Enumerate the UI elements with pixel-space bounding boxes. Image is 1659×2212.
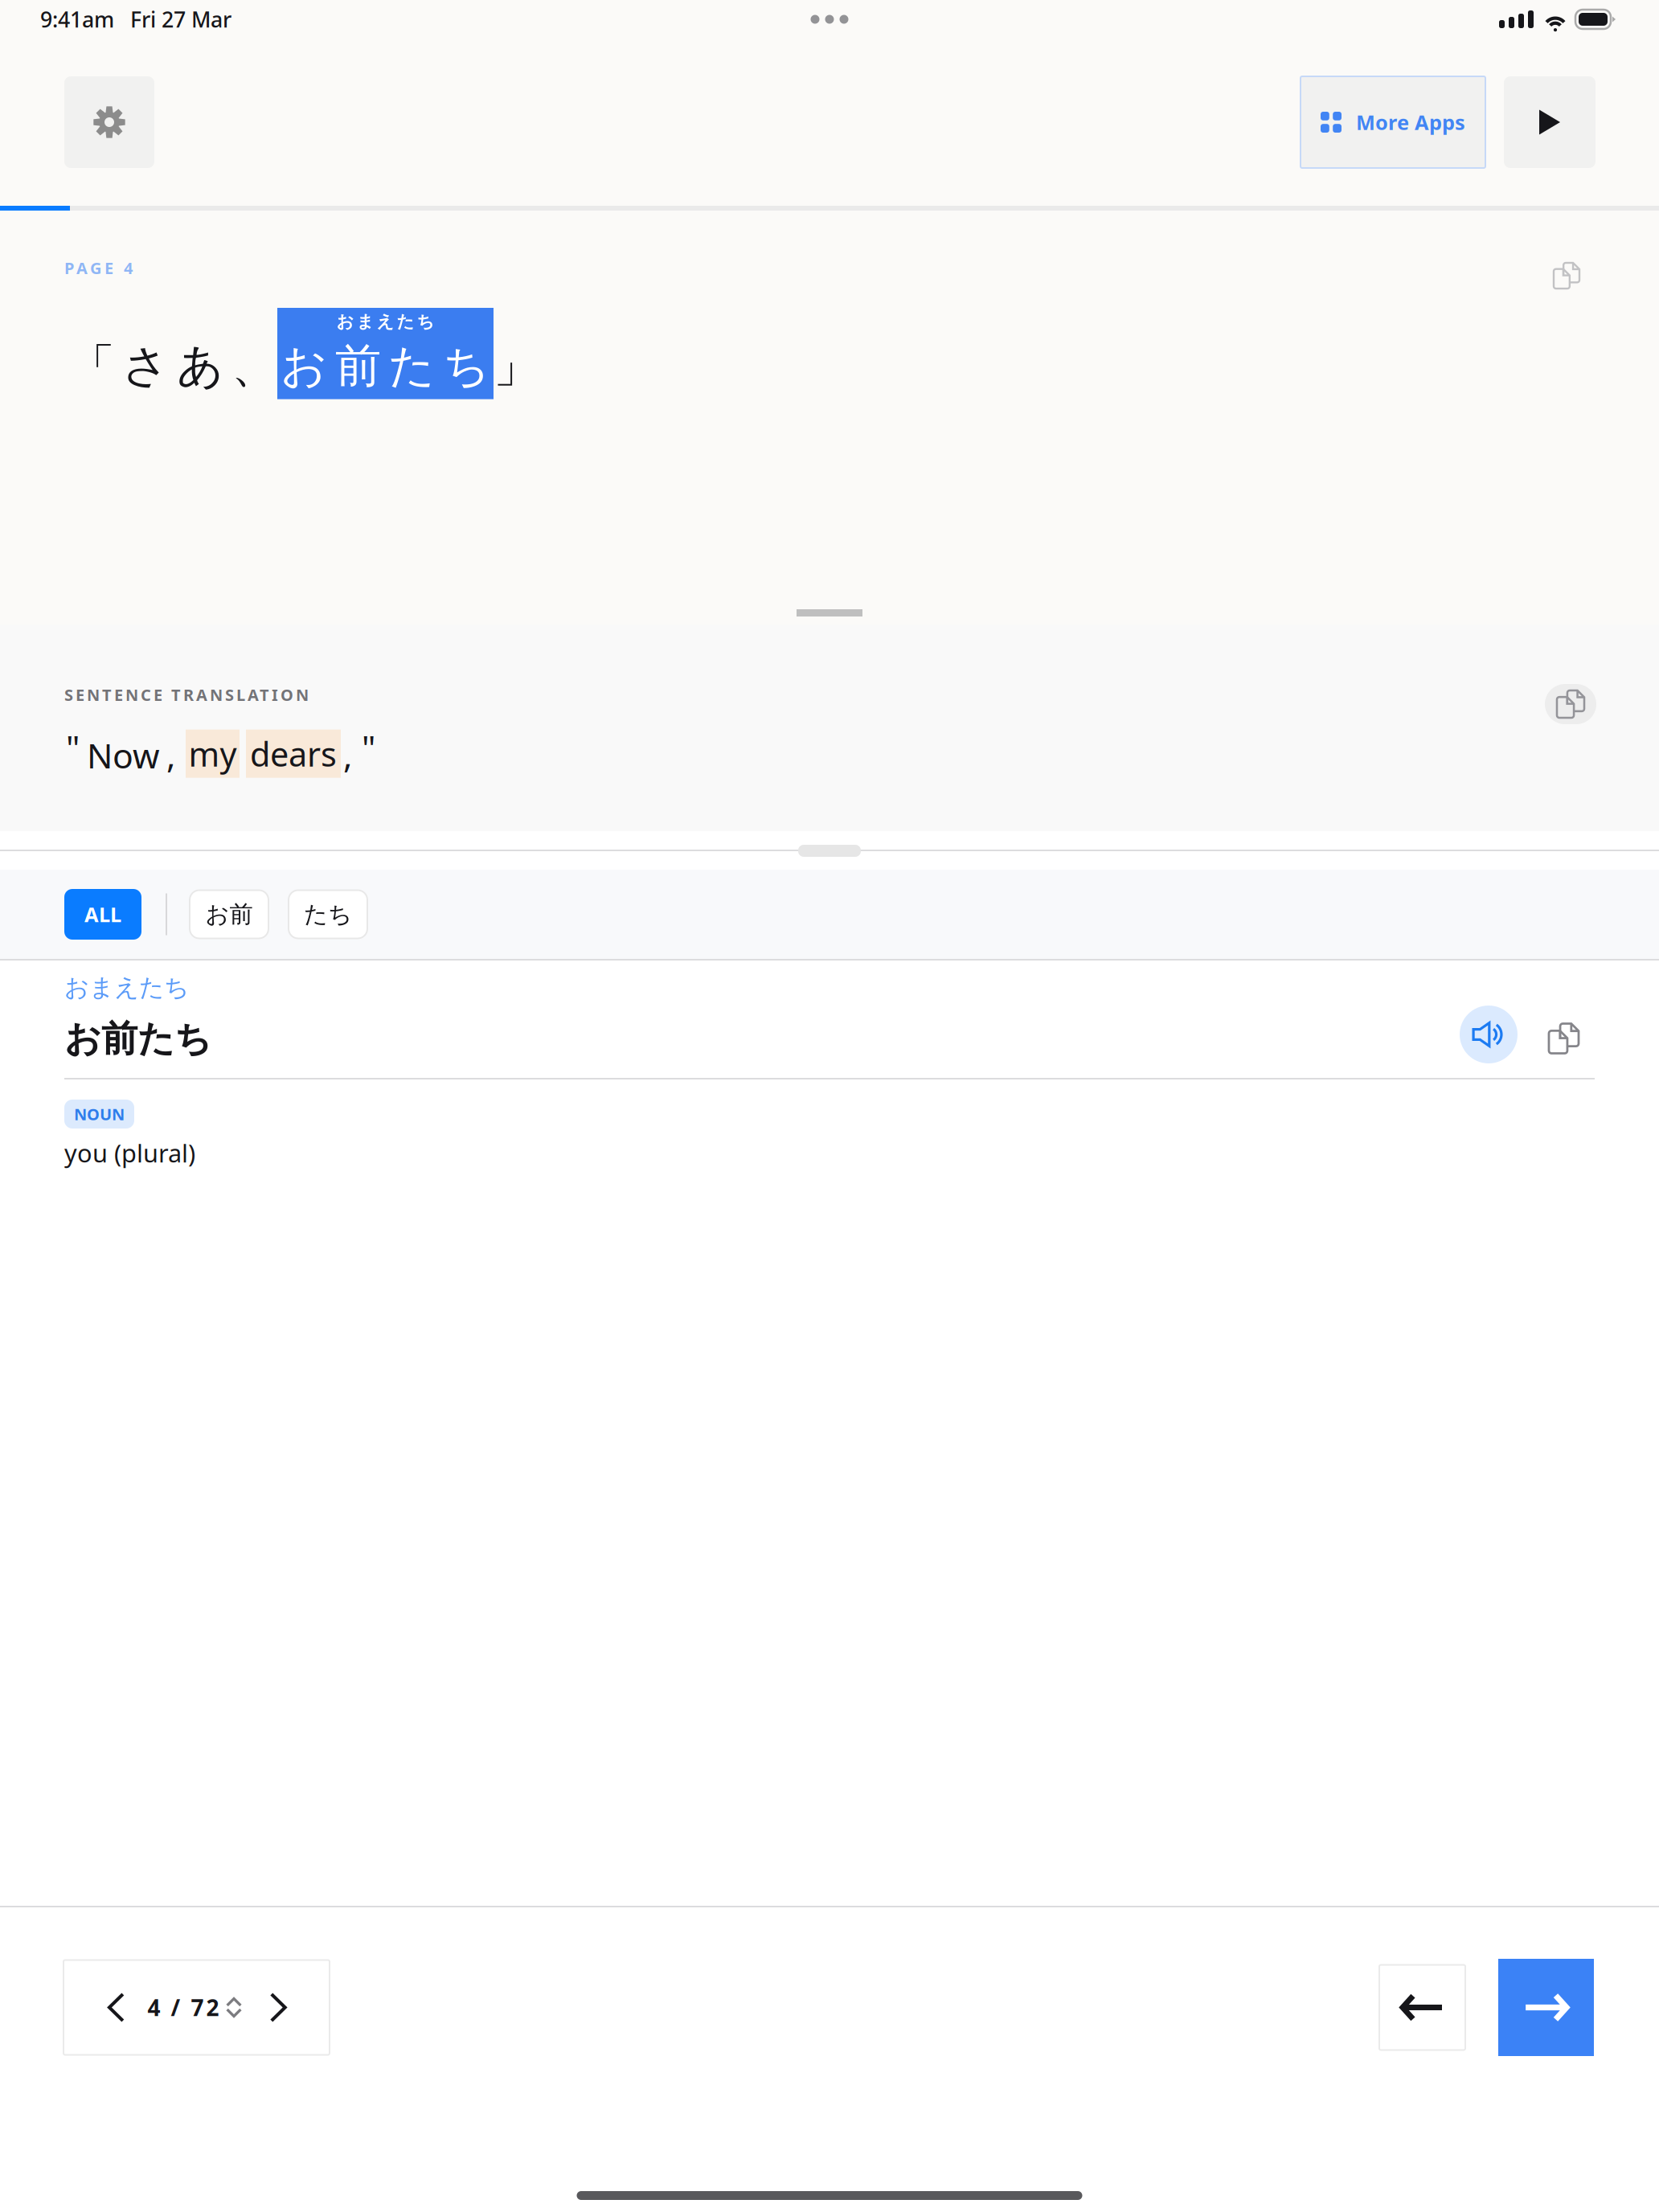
staticText: " [362, 724, 375, 770]
button[interactable]: Play [1504, 76, 1596, 168]
staticText: , [343, 732, 352, 778]
staticText: 4 / 72 [148, 1992, 219, 2022]
staticText: Fri 27 Mar [130, 5, 231, 34]
button[interactable]: Copy word [1549, 977, 1579, 1057]
staticText: お前 [205, 900, 253, 929]
button[interactable]: Copy sentence [1543, 252, 1590, 299]
staticText: 「さあ、 [69, 338, 277, 394]
staticText: ALL [84, 901, 121, 928]
staticText: More Apps [1356, 109, 1465, 136]
staticText: you (plural) [64, 1137, 195, 1169]
button[interactable]: Settings [64, 76, 154, 168]
button[interactable]: Play pronunciation [1460, 970, 1518, 1063]
staticText: Now [87, 732, 160, 778]
button[interactable]: Previous page [91, 1975, 140, 2040]
staticText: 9:41am [40, 5, 114, 34]
staticText: PAGE 4 [64, 257, 133, 279]
staticText: 」 [494, 338, 539, 394]
staticText: お前たち [64, 1016, 211, 1061]
staticText: たち [304, 900, 352, 929]
staticText: おまえたち [336, 311, 434, 332]
staticText: SENTENCE TRANSLATION [64, 684, 309, 705]
button[interactable]: お前 [190, 890, 268, 938]
button[interactable]: ALL [64, 889, 141, 940]
staticText: " [66, 724, 80, 770]
button[interactable]: More Apps [1301, 76, 1485, 168]
button[interactable]: Next page [254, 1975, 302, 2040]
staticText: お前たち [281, 338, 490, 394]
staticText: おまえたち [64, 972, 189, 1003]
staticText: dears [250, 732, 337, 776]
button[interactable]: Copy translation [1545, 684, 1596, 724]
button[interactable]: たち [289, 890, 367, 938]
button[interactable]: Next [1498, 1959, 1594, 2056]
button[interactable]: Back [1379, 1965, 1465, 2050]
staticText: NOUN [74, 1103, 125, 1125]
staticText: , [166, 732, 175, 778]
staticText: my [188, 732, 237, 776]
